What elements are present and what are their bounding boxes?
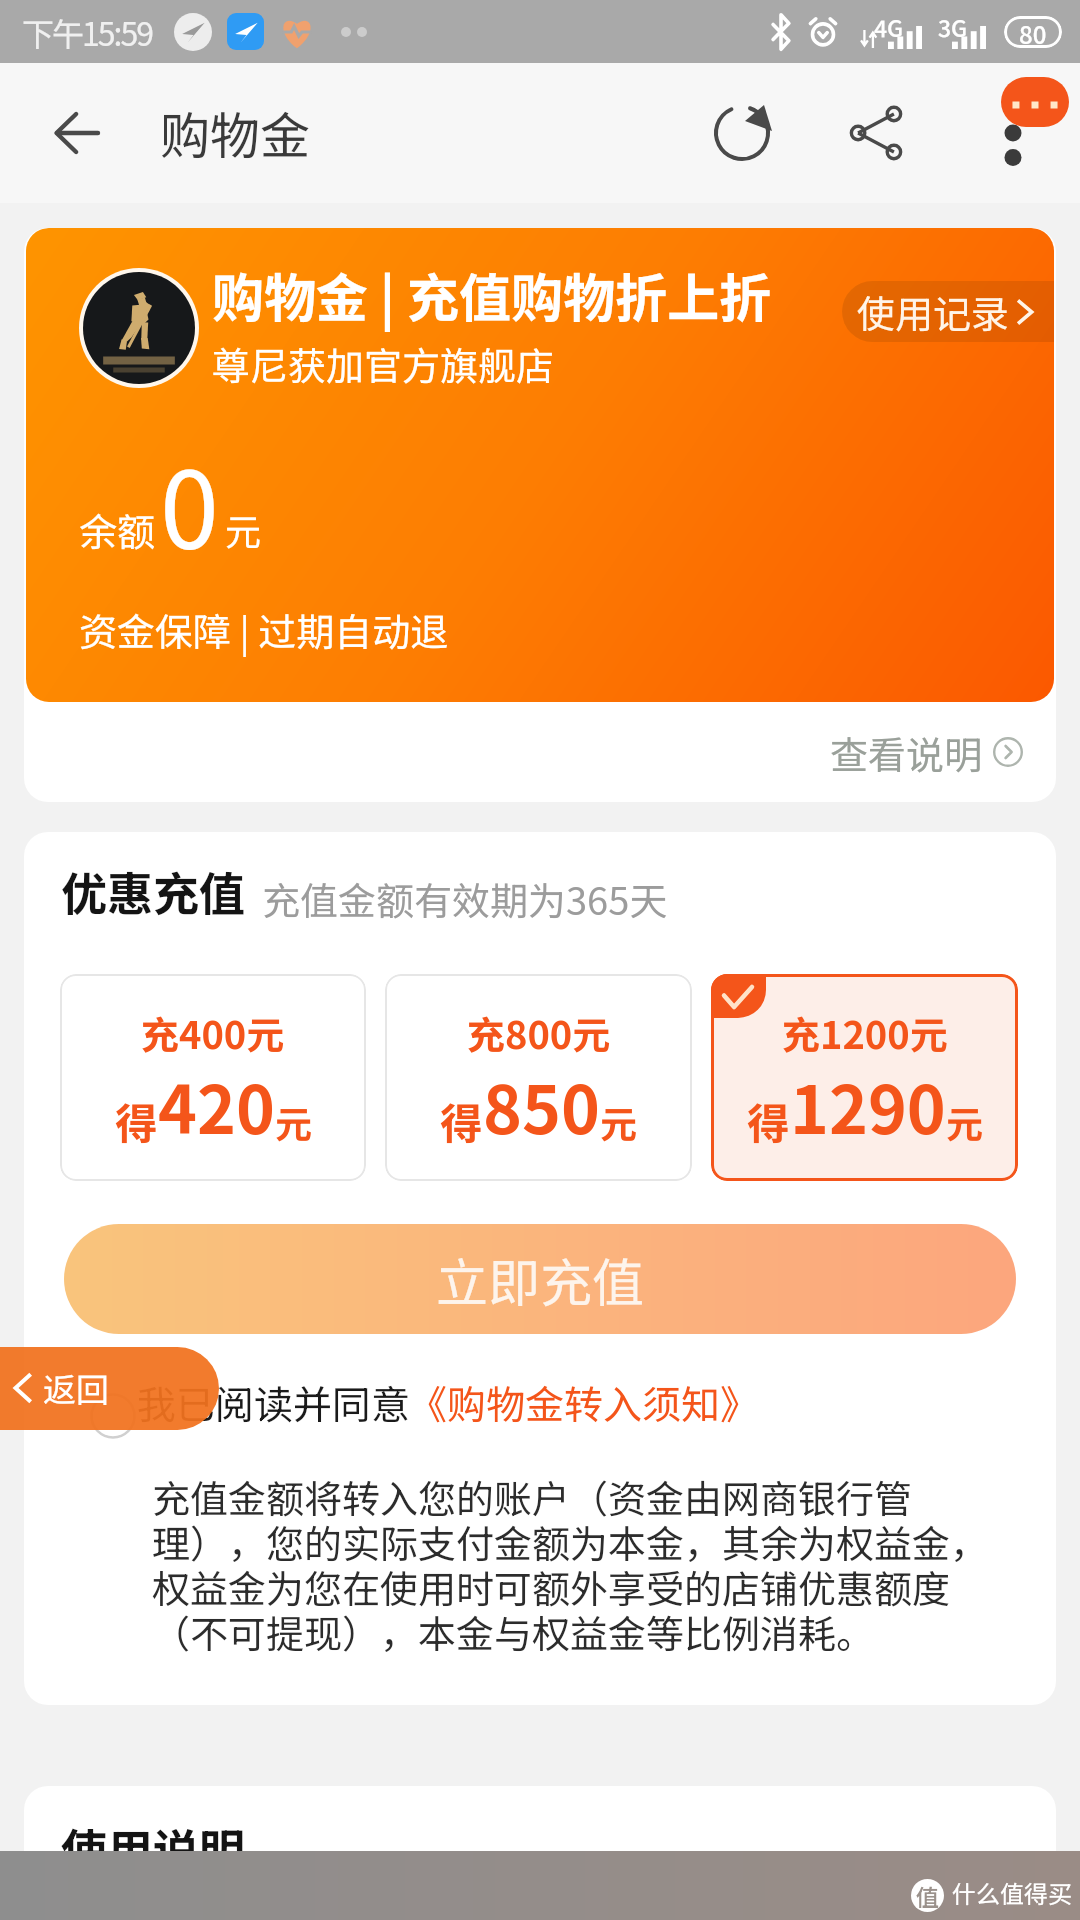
staticText: 充值金额将转入您的账户（资金由网商银行管 理），您的实际支付金额为本金，其余为权… bbox=[152, 1469, 1032, 1659]
staticText: 1290 bbox=[790, 1057, 946, 1153]
button[interactable]: 返回 bbox=[0, 1347, 219, 1430]
staticText: 购物金 | 充值购物折上折 bbox=[212, 257, 772, 332]
staticText: 元 bbox=[225, 503, 262, 555]
button[interactable]: 我已阅读并同意 bbox=[84, 1370, 814, 1440]
staticText: 3G bbox=[938, 10, 968, 43]
staticText: 4G bbox=[874, 10, 904, 43]
button[interactable]: 充1200元 bbox=[711, 974, 1018, 1181]
staticText: 元 bbox=[275, 1095, 312, 1149]
staticText: 资金保障 | 过期自动退 bbox=[79, 602, 449, 657]
staticText: 我已阅读并同意 bbox=[137, 1374, 411, 1430]
staticText: 尊尼获加官方旗舰店 bbox=[212, 336, 555, 391]
staticText: 得 bbox=[115, 1090, 158, 1151]
staticText: 返回 bbox=[43, 1364, 109, 1412]
staticText: 元 bbox=[946, 1095, 983, 1149]
button[interactable]: 查看说明 bbox=[24, 702, 1056, 802]
button[interactable]: Refresh bbox=[687, 78, 797, 188]
staticText: 使用记录 bbox=[857, 284, 1010, 339]
staticText: 充1200元 bbox=[782, 1005, 948, 1060]
staticText: 0 bbox=[160, 426, 219, 579]
staticText: 80 bbox=[1019, 16, 1047, 48]
staticText: 值 bbox=[916, 1879, 939, 1912]
staticText: 充值金额有效期为365天 bbox=[262, 871, 668, 926]
staticText: 下午15:59 bbox=[22, 9, 152, 55]
staticText: 《购物金转入须知》 bbox=[408, 1374, 760, 1430]
button[interactable]: 充400元 bbox=[60, 974, 366, 1181]
staticText: 使用说明 bbox=[61, 1815, 245, 1882]
button[interactable]: Back bbox=[22, 63, 132, 203]
staticText: 850 bbox=[483, 1057, 600, 1153]
button[interactable]: 使用记录 bbox=[842, 281, 1054, 342]
staticText: 元 bbox=[600, 1095, 637, 1149]
staticText: 什么值得买 bbox=[952, 1875, 1072, 1910]
staticText: 购物金 bbox=[160, 96, 310, 168]
button[interactable]: 充800元 bbox=[385, 974, 692, 1181]
staticText: 立即充值 bbox=[436, 1242, 645, 1317]
staticText: 得 bbox=[747, 1090, 790, 1151]
staticText: 420 bbox=[158, 1057, 275, 1153]
button[interactable]: Share bbox=[821, 78, 931, 188]
staticText: 得 bbox=[440, 1090, 483, 1151]
staticText: 优惠充值 bbox=[61, 858, 245, 925]
staticText: 查看说明 bbox=[830, 725, 983, 780]
staticText: 余额 bbox=[79, 502, 156, 557]
staticText: 充400元 bbox=[141, 1005, 285, 1060]
button[interactable]: More options bbox=[958, 78, 1068, 188]
button[interactable]: 立即充值 bbox=[64, 1224, 1016, 1334]
staticText: 充800元 bbox=[467, 1005, 611, 1060]
